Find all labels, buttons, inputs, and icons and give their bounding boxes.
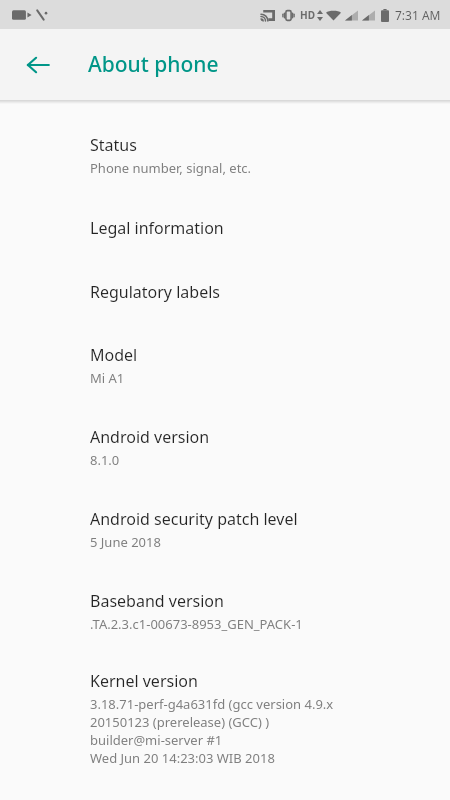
staticText: Android version: [90, 426, 210, 448]
staticText: HD: [300, 8, 315, 22]
staticText: builder@mi-server #1: [90, 731, 223, 749]
staticText: Kernel version: [90, 670, 198, 692]
staticText: Android security patch level: [90, 508, 298, 530]
button[interactable]: Baseband version: [0, 570, 450, 652]
button[interactable]: Legal information: [0, 196, 450, 260]
staticText: Mi A1: [90, 369, 125, 387]
button[interactable]: Regulatory labels: [0, 260, 450, 324]
staticText: About phone: [88, 50, 219, 79]
staticText: Regulatory labels: [90, 281, 220, 303]
button[interactable]: Android version: [0, 406, 450, 488]
button[interactable]: Back: [14, 41, 62, 89]
staticText: 20150123 (prerelease) (GCC) ): [90, 713, 270, 731]
staticText: 5 June 2018: [90, 533, 161, 551]
staticText: 8.1.0: [90, 451, 120, 469]
button[interactable]: Status: [0, 114, 450, 196]
staticText: .TA.2.3.c1-00673-8953_GEN_PACK-1: [90, 615, 303, 633]
button[interactable]: Model: [0, 324, 450, 406]
button[interactable]: Android security patch level: [0, 488, 450, 570]
staticText: Model: [90, 344, 138, 366]
staticText: Legal information: [90, 217, 224, 239]
staticText: Status: [90, 134, 137, 156]
staticText: 3.18.71-perf-g4a631fd (gcc version 4.9.x: [90, 695, 334, 713]
staticText: Wed Jun 20 14:23:03 WIB 2018: [90, 749, 275, 767]
staticText: Phone number, signal, etc.: [90, 159, 252, 177]
staticText: Baseband version: [90, 590, 224, 612]
staticText: 7:31 AM: [395, 7, 441, 23]
button[interactable]: Kernel version: [0, 652, 450, 785]
